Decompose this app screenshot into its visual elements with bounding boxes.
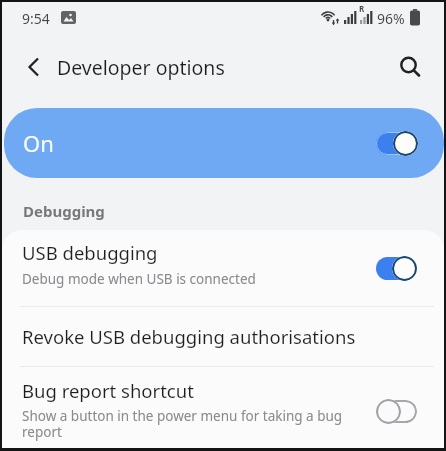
- button[interactable]: [392, 48, 428, 84]
- button[interactable]: [375, 131, 418, 156]
- staticText: Bug report shortcut: [22, 378, 194, 403]
- staticText: Show a button in the power menu for taki…: [22, 407, 343, 441]
- staticText: R: [359, 3, 365, 14]
- button[interactable]: On: [4, 108, 444, 178]
- staticText: On: [23, 128, 54, 158]
- button[interactable]: USB debugging: [2, 230, 444, 305]
- staticText: 9:54: [22, 9, 50, 28]
- staticText: Debug mode when USB is connected: [22, 270, 256, 288]
- staticText: 96%: [377, 9, 405, 28]
- staticText: Debugging: [23, 201, 105, 221]
- button[interactable]: [376, 399, 417, 424]
- button[interactable]: Revoke USB debugging authorisations: [2, 307, 444, 366]
- button[interactable]: [16, 50, 50, 84]
- button[interactable]: Bug report shortcut: [2, 367, 444, 448]
- staticText: Revoke USB debugging authorisations: [22, 324, 356, 349]
- staticText: Developer options: [57, 54, 225, 81]
- button[interactable]: [376, 256, 417, 281]
- staticText: USB debugging: [22, 240, 158, 265]
